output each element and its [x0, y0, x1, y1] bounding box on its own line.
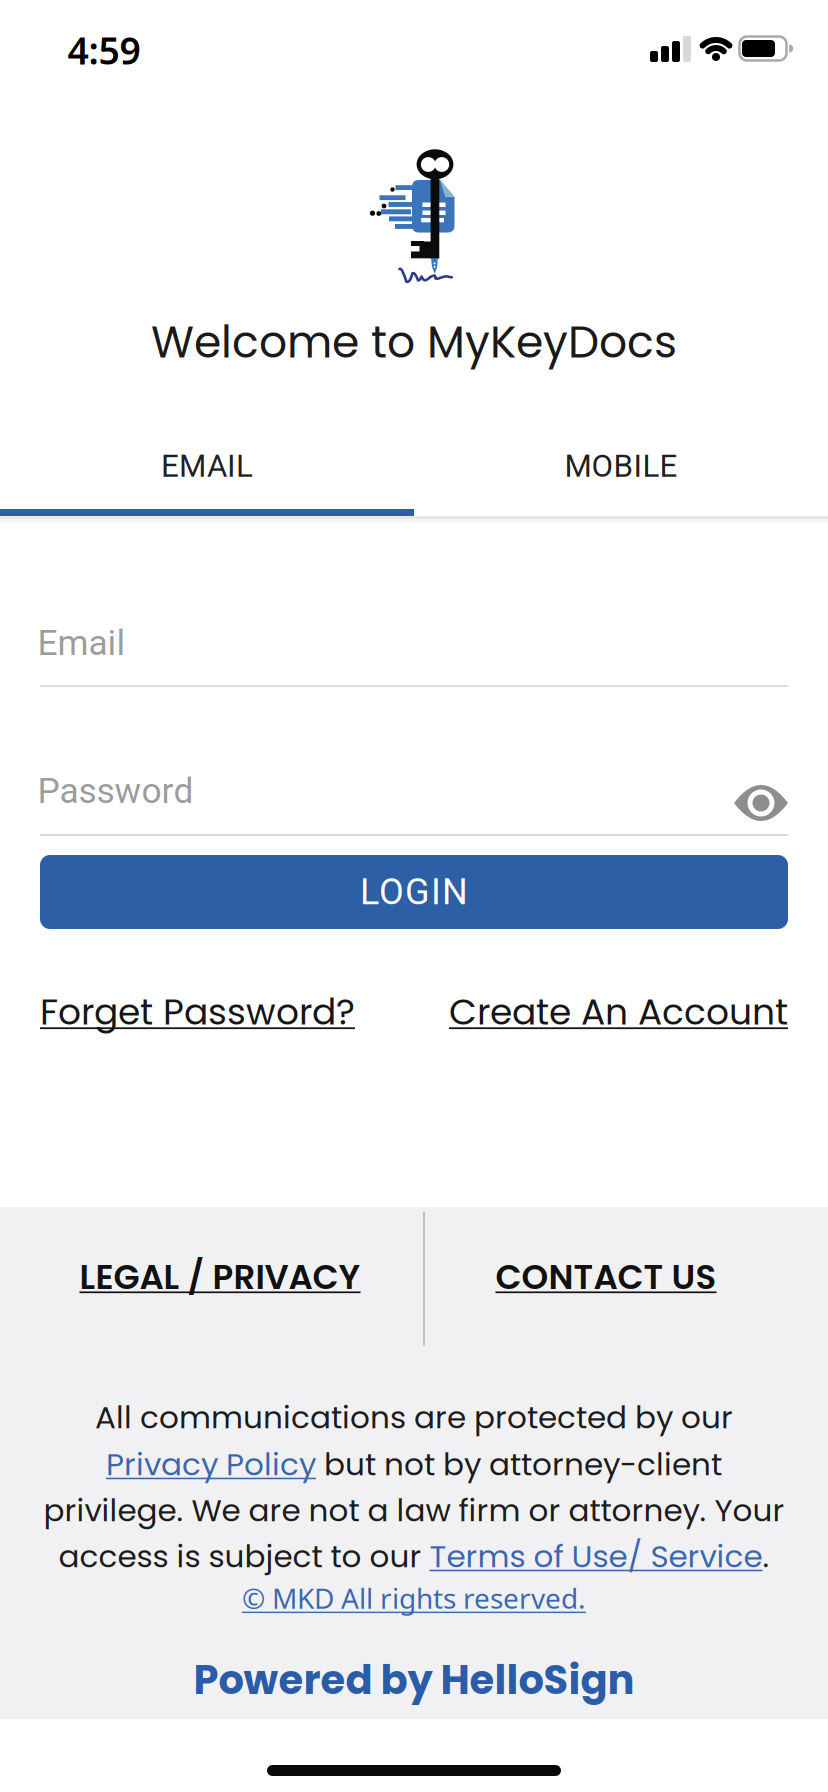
staticText: EMAIL — [161, 448, 253, 484]
button[interactable]: Email — [40, 609, 788, 687]
staticText: Password — [37, 770, 193, 812]
staticText: Create An Account — [449, 987, 788, 1037]
staticText: privilege. We are not a law firm or atto… — [43, 1489, 784, 1532]
staticText: Terms of Use/ Service — [429, 1535, 762, 1578]
staticText: CONTACT US — [495, 1253, 716, 1301]
button[interactable]: LEGAL / PRIVACY — [79, 1253, 360, 1301]
button[interactable]: EMAIL — [0, 421, 414, 511]
button[interactable]: Terms of Use/ Service — [429, 1535, 762, 1578]
staticText: 4:59 — [67, 25, 140, 75]
staticText: Forget Password? — [40, 987, 355, 1037]
staticText: but not by attorney-client — [316, 1443, 722, 1486]
button[interactable]: Password — [40, 757, 788, 837]
staticText: MOBILE — [564, 448, 677, 484]
button[interactable]: Forget Password? — [40, 987, 355, 1037]
button[interactable]: CONTACT US — [495, 1253, 716, 1301]
button[interactable] — [726, 775, 796, 831]
button[interactable]: © MKD All rights reserved. — [242, 1579, 586, 1617]
staticText: Welcome to MyKeyDocs — [151, 311, 677, 373]
button[interactable]: Privacy Policy — [106, 1443, 316, 1486]
staticText: Privacy Policy — [106, 1443, 316, 1486]
staticText: LEGAL / PRIVACY — [79, 1253, 360, 1301]
button[interactable]: Create An Account — [449, 987, 788, 1037]
button[interactable]: LOGIN — [40, 855, 788, 929]
button[interactable]: MOBILE — [414, 421, 828, 511]
staticText: access is subject to our — [58, 1535, 429, 1578]
staticText: LOGIN — [360, 871, 468, 913]
staticText: Powered by HelloSign — [193, 1652, 634, 1708]
staticText: All communications are protected by our — [95, 1396, 733, 1439]
staticText: Email — [37, 622, 125, 664]
staticText: . — [762, 1535, 769, 1578]
staticText: © MKD All rights reserved. — [242, 1579, 586, 1617]
